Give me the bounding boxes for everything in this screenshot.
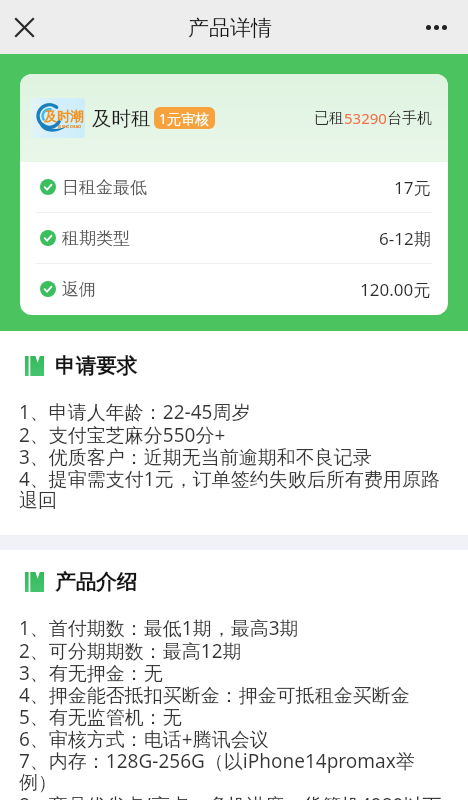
button[interactable]: 租期类型 [20,213,448,264]
button[interactable]: 日租金最低 [20,162,448,213]
button[interactable]: 更多 [414,5,458,49]
staticText: 日租金最低 [62,177,147,198]
staticText: 1、首付期数：最低1期，最高3期 2、可分期期数：最高12期 3、有无押金：无 … [19,615,443,800]
staticText: JI SHI CHAO [58,124,82,129]
button[interactable]: 返佣 [20,264,448,315]
staticText: 申请要求 [55,353,137,379]
staticText: 及时潮 [44,108,83,124]
staticText: 返佣 [62,279,96,300]
staticText: 产品详情 [188,15,272,41]
staticText: 120.00元 [360,278,431,301]
button[interactable]: 关闭 [2,5,46,49]
staticText: 及时租 [92,106,151,131]
staticText: 1、申请人年龄：22-45周岁 2、支付宝芝麻分550分+ 3、优质客户：近期无… [19,399,443,513]
staticText: 台手机 [387,109,432,128]
staticText: 已租 [314,109,344,128]
staticText: 6-12期 [379,227,431,250]
staticText: 17元 [394,176,431,199]
staticText: 53290 [344,108,387,128]
staticText: 租期类型 [62,228,130,249]
staticText: 产品介绍 [55,569,137,595]
staticText: 1元审核 [159,109,210,128]
